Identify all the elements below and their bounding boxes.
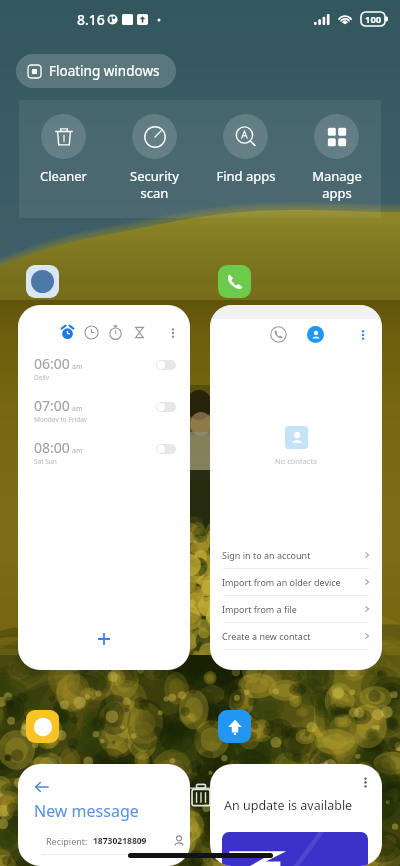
button[interactable]: Import from a file [210,596,382,622]
staticText: Import from a file [222,603,297,615]
staticText: Security scan [130,167,179,202]
staticText: Floating windows [49,62,160,80]
button[interactable]: Timer [132,325,147,340]
button[interactable]: Sign in to an account [210,542,382,568]
staticText: Import from an older device [222,576,341,588]
button[interactable]: Clock [84,325,99,340]
staticText: Recipient: [46,835,88,847]
staticText: Cleaner [40,167,87,185]
button[interactable]: Toggle alarm [156,444,176,454]
staticText: No contacts [275,456,317,466]
staticText: Sat Sun [34,457,57,464]
button[interactable]: More options [358,775,373,790]
button[interactable]: Floating windows [16,54,176,88]
button[interactable]: Back [18,764,190,866]
button[interactable]: 08:00 [18,438,190,464]
button[interactable]: More options [210,764,382,866]
button[interactable]: 07:00 [18,396,190,422]
button[interactable]: Toggle alarm [156,402,176,412]
button[interactable]: No contacts [210,305,382,670]
staticText: Daily [34,373,50,380]
button[interactable]: Find apps [200,114,291,185]
button[interactable]: Security scan [109,114,200,202]
button[interactable]: Stopwatch [108,325,123,340]
button[interactable]: Toggle alarm [156,360,176,370]
staticText: New message [34,800,139,822]
button[interactable]: 06:00 [18,354,190,380]
staticText: Find apps [216,167,276,185]
staticText: 06:00 [34,354,70,373]
staticText: 100 [365,13,382,26]
staticText: 08:00 [34,438,70,457]
staticText: Create a new contact [222,630,311,642]
button[interactable]: Create a new contact [210,623,382,649]
staticText: am [72,404,83,414]
staticText: Monday to Friday [34,415,88,422]
button[interactable]: Manage apps [291,114,382,202]
staticText: An update is available [224,797,353,814]
button[interactable]: More options [166,326,180,340]
staticText: Sign in to an account [222,549,311,561]
staticText: 8.16 [77,10,105,29]
staticText: am [72,446,83,456]
button[interactable]: Import from an older device [210,569,382,595]
staticText: 18730218809 [93,835,147,847]
button[interactable]: Alarm [60,325,75,340]
button[interactable]: Back [34,779,50,795]
staticText: am [72,362,83,372]
staticText: 07:00 [34,396,70,415]
button[interactable]: Delete [187,781,215,809]
staticText: Manage apps [312,167,362,202]
button[interactable]: Alarm [18,305,190,670]
button[interactable]: Cleaner [18,114,109,185]
